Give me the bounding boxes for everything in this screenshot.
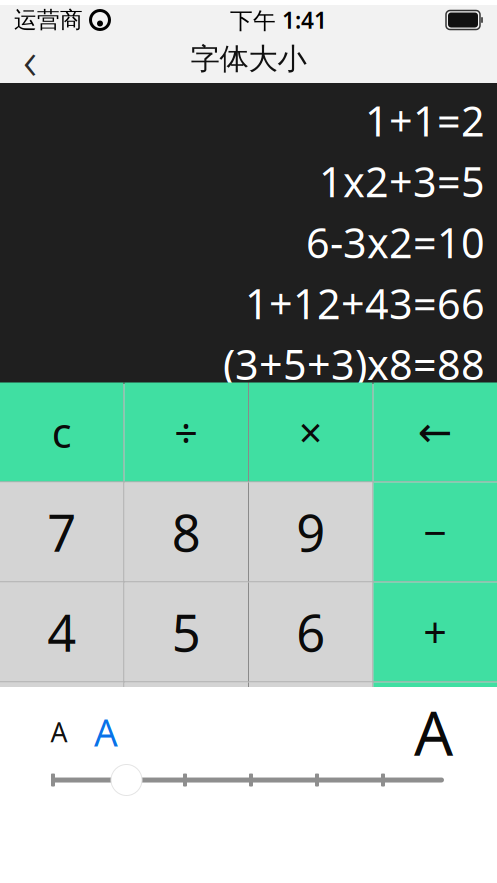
button[interactable]: 7 [0,482,123,581]
staticText: 6-3x2=10 [306,215,485,270]
staticText: A [94,707,118,757]
staticText: ← [418,408,453,455]
button[interactable]: c [0,382,123,481]
staticText: 1x2+3=5 [319,154,485,209]
button[interactable]: 6 [249,582,372,681]
button[interactable]: 3 [249,682,372,688]
button[interactable]: Plus [373,582,497,681]
staticText: 下午 1:41 [230,5,327,35]
staticText: 4 [47,598,76,666]
button[interactable]: 2 [124,682,248,688]
staticText: 9 [296,498,325,566]
button[interactable]: ÷ [124,382,248,481]
button[interactable]: 9 [249,482,372,581]
button[interactable]: 1 [0,682,123,688]
staticText: ÷ [174,405,198,459]
button[interactable]: Backspace [373,382,497,481]
staticText: = [423,682,447,688]
staticText: c [52,405,72,459]
staticText: 8 [172,498,201,566]
button[interactable]: 4 [0,582,123,681]
staticText: 3 [296,682,325,688]
staticText: A [414,691,453,773]
staticText: × [299,405,323,459]
staticText: 2 [172,682,201,688]
staticText: 5 [172,598,201,666]
staticText: 1 [47,682,76,688]
staticText: − [423,505,447,559]
staticText: ‹ [23,24,37,94]
staticText: 1+1=2 [365,93,485,148]
button[interactable]: 8 [124,482,248,581]
button[interactable]: Equals [373,682,497,688]
staticText: (3+5+3)x8=88 [223,337,485,391]
button[interactable]: Back [0,35,60,83]
staticText: 7 [47,498,76,566]
button[interactable]: Minus [373,482,497,581]
staticText: 字体大小 [190,41,306,77]
button[interactable]: × [249,382,372,481]
staticText: 1+12+43=66 [245,276,485,331]
staticText: A [50,714,67,750]
staticText: 6 [296,598,325,666]
staticText: 运营商 [14,6,83,34]
button[interactable]: 5 [124,582,248,681]
staticText: + [423,605,447,659]
